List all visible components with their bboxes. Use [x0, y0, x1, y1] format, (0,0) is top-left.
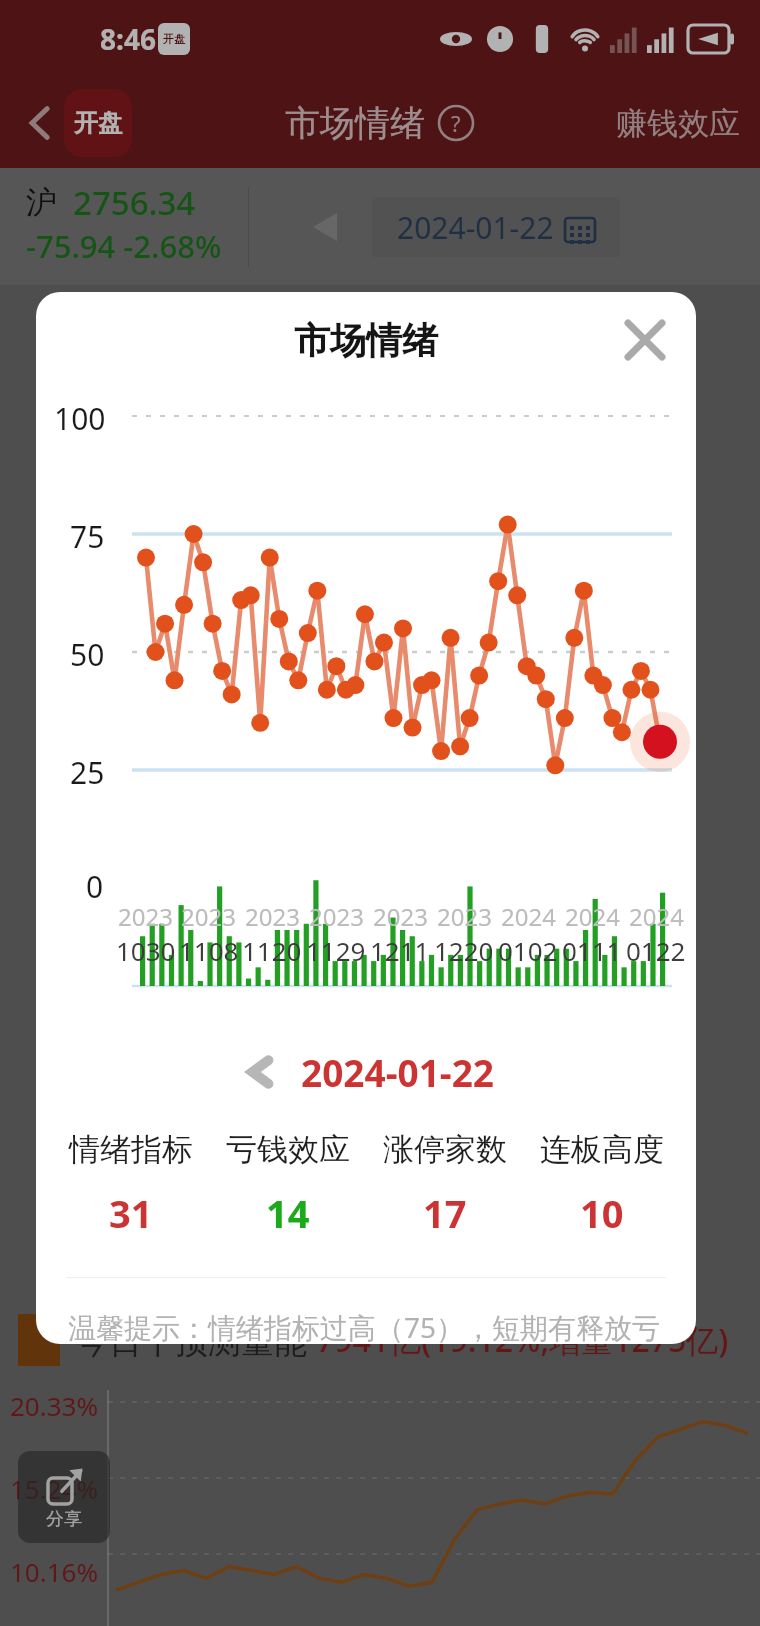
staticText: 2024 [629, 900, 684, 933]
staticText: 0111 [562, 933, 622, 968]
staticText: 2024-01-22 [397, 207, 554, 248]
button[interactable]: Help [437, 104, 475, 142]
button[interactable]: 开盘 [64, 89, 132, 157]
staticText: 2024-01-22 [301, 1047, 494, 1097]
staticText: 75 [70, 516, 105, 557]
staticText: 分享 [46, 1508, 82, 1531]
staticText: 涨停家数 [383, 1130, 507, 1169]
button[interactable]: 2024-01-22 [372, 197, 620, 257]
staticText: 100 [54, 398, 106, 439]
staticText: 2023 [309, 900, 364, 933]
staticText: 0 [86, 866, 104, 907]
staticText: 10 [580, 1187, 624, 1239]
staticText: 今日丨预测量能 [76, 1318, 316, 1363]
staticText: 0102 [498, 933, 558, 968]
other: Previous day [300, 202, 350, 252]
staticText: 连板高度 [540, 1130, 664, 1169]
button[interactable]: Share [18, 1451, 110, 1543]
staticText: 0122 [626, 933, 686, 968]
staticText: 50 [70, 634, 105, 675]
staticText: 市场情绪 [294, 318, 438, 363]
staticText: 赚钱效应 [616, 104, 740, 143]
staticText: -75.94 -2.68% [26, 225, 222, 267]
button[interactable]: Close [616, 311, 674, 369]
staticText: 2023 [437, 900, 492, 933]
button[interactable]: 连板高度 [523, 1126, 680, 1243]
staticText: 1220 [434, 933, 494, 968]
staticText: 市场情绪 [285, 101, 425, 145]
staticText: 25 [70, 752, 105, 793]
staticText: 15.24% [10, 1471, 99, 1506]
staticText: 1211 [370, 933, 430, 968]
staticText: 情绪指标 [69, 1130, 193, 1169]
staticText: 沪 [26, 183, 57, 222]
staticText: 1129 [306, 933, 366, 968]
button[interactable]: 亏钱效应 [209, 1126, 366, 1243]
button[interactable]: 2024-01-22 [36, 1028, 696, 1116]
staticText: 2023 [181, 900, 236, 933]
staticText: 温馨提示：情绪指标过高（75），短期有释放亏钱效应的风险；情绪指标过低（25），… [68, 1308, 664, 1344]
staticText: 2023 [118, 900, 173, 933]
staticText: 17 [423, 1187, 467, 1239]
staticText: 20.33% [10, 1388, 99, 1423]
staticText: 7941亿(19.12%,增量1275亿) [316, 1318, 729, 1362]
staticText: 2756.34 [73, 180, 196, 225]
staticText: 亏钱效应 [226, 1130, 350, 1169]
button[interactable]: 赚钱效应 [616, 104, 740, 143]
staticText: 1108 [179, 933, 239, 968]
staticText: 开盘 [74, 108, 122, 138]
staticText: 2023 [373, 900, 428, 933]
staticText: 10.16% [10, 1554, 99, 1589]
button[interactable]: Back [8, 91, 72, 155]
staticText: 1030 [116, 933, 176, 968]
staticText: 1120 [242, 933, 302, 968]
button[interactable]: 情绪指标 [52, 1126, 209, 1243]
staticText: 2024 [501, 900, 556, 933]
staticText: 开盘 [163, 32, 185, 46]
staticText: 2023 [245, 900, 300, 933]
staticText: 2024 [565, 900, 620, 933]
button[interactable]: 涨停家数 [366, 1126, 523, 1243]
staticText: 8:46 [100, 20, 156, 58]
staticText: ? [451, 108, 461, 138]
staticText: 14 [266, 1187, 310, 1239]
staticText: 31 [109, 1187, 153, 1239]
